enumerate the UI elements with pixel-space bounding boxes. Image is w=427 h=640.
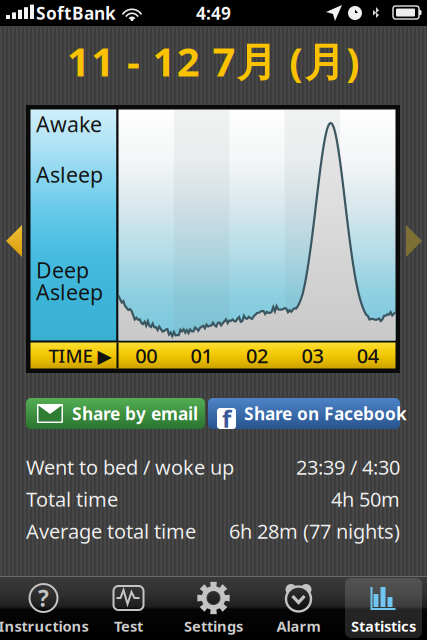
button[interactable]: Settings: [171, 576, 256, 640]
staticText: ?: [38, 583, 49, 613]
button[interactable]: Share by email: [26, 398, 205, 429]
button[interactable]: ?: [1, 576, 86, 640]
staticText: 4:49: [196, 1, 231, 24]
staticText: Share by email: [72, 402, 198, 425]
staticText: Instructions: [0, 616, 88, 636]
staticText: 03: [301, 342, 323, 369]
staticText: Test: [114, 616, 143, 636]
staticText: 4h 50m: [331, 486, 400, 512]
button[interactable]: Statistics: [341, 576, 426, 640]
staticText: Deep: [36, 256, 89, 284]
staticText: 00: [135, 342, 157, 369]
staticText: Statistics: [351, 616, 416, 636]
button[interactable]: Test: [86, 576, 171, 640]
staticText: Went to bed / woke up: [26, 454, 234, 480]
staticText: 02: [246, 342, 268, 369]
button[interactable]: Alarm: [256, 576, 341, 640]
button[interactable]: f: [208, 398, 400, 429]
button[interactable]: Previous day: [1, 211, 27, 271]
staticText: 11 - 12 7月 (月): [67, 34, 360, 87]
staticText: Asleep: [36, 160, 103, 189]
staticText: Settings: [184, 616, 243, 636]
staticText: Asleep: [36, 278, 103, 306]
staticText: SoftBank: [36, 1, 116, 24]
button[interactable]: Next day: [401, 211, 427, 271]
staticText: TIME ▶: [48, 343, 111, 368]
staticText: 04: [357, 342, 379, 369]
staticText: Average total time: [26, 518, 196, 544]
staticText: 23:39 / 4:30: [296, 454, 400, 480]
staticText: f: [222, 403, 231, 434]
staticText: Total time: [26, 486, 118, 512]
staticText: Share on Facebook: [244, 402, 407, 425]
staticText: 6h 28m (77 nights): [229, 518, 400, 544]
staticText: 01: [191, 342, 213, 369]
staticText: Alarm: [276, 616, 320, 636]
staticText: Awake: [36, 110, 102, 138]
